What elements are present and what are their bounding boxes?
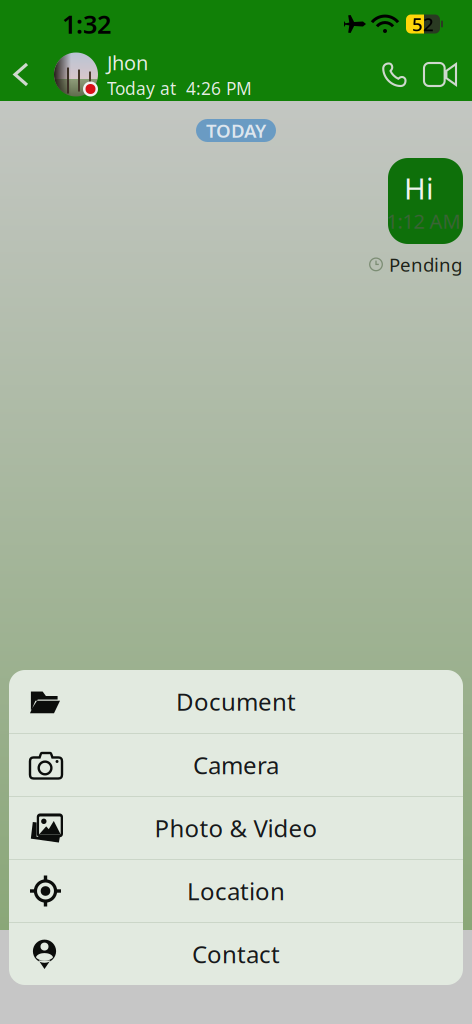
button[interactable]: Jhon (54, 49, 252, 100)
staticText: 1:32 (62, 7, 111, 41)
staticText: Hi (404, 169, 434, 208)
button[interactable]: Contact (9, 922, 463, 985)
staticText: Pending (389, 252, 462, 277)
button[interactable]: Back (0, 54, 54, 95)
button[interactable]: Photo & Video (9, 796, 463, 859)
staticText: Photo & Video (154, 812, 317, 844)
staticText: Camera (193, 749, 279, 781)
button[interactable]: Document (9, 670, 463, 733)
button[interactable]: Location (9, 859, 463, 922)
staticText: Document (176, 686, 296, 717)
button[interactable]: Voice call (373, 54, 416, 95)
staticText: Jhon (107, 49, 148, 76)
staticText: 52 (412, 12, 434, 36)
staticText: Contact (192, 938, 280, 970)
button[interactable]: Video call (416, 55, 472, 94)
button[interactable]: Camera (9, 733, 463, 796)
staticText: Today at 4:26 PM (107, 77, 252, 100)
staticText: TODAY (206, 118, 266, 143)
staticText: Location (187, 875, 285, 907)
staticText: 1:12 AM (386, 208, 460, 234)
